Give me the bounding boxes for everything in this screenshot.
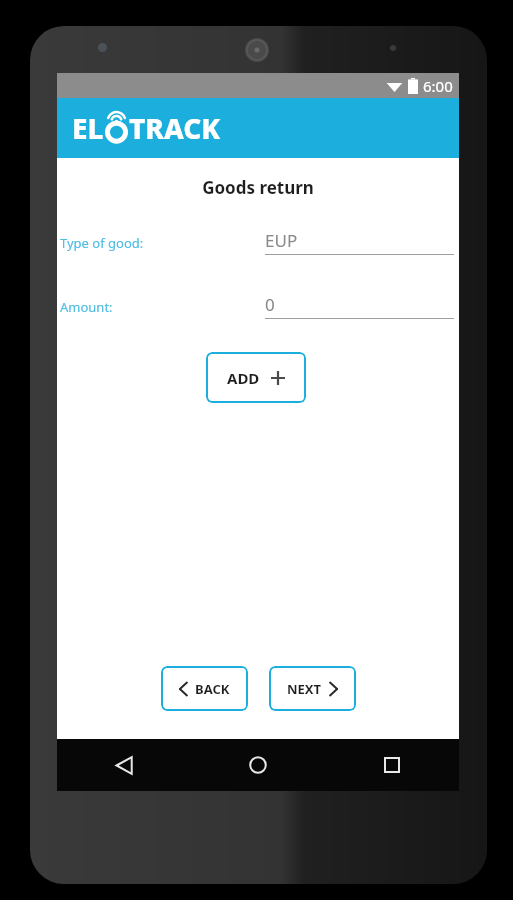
staticText: EL [72, 109, 104, 147]
staticText: TRACK [129, 109, 221, 147]
staticText: NEXT [287, 680, 322, 698]
staticText: Goods return [57, 176, 459, 199]
staticText: Type of good: [60, 234, 144, 252]
staticText: 6:00 [423, 76, 453, 96]
button[interactable]: Amount: [57, 290, 459, 324]
button[interactable]: NEXT [269, 666, 356, 711]
button[interactable]: Type of good: [57, 226, 459, 260]
button[interactable]: Back [57, 739, 191, 791]
button[interactable]: Recent apps [325, 739, 459, 791]
button[interactable]: EloTrack home [72, 109, 221, 147]
staticText: Amount: [60, 298, 113, 316]
staticText: 0 [265, 293, 275, 316]
staticText: ADD [227, 368, 260, 388]
button[interactable]: BACK [161, 666, 248, 711]
button[interactable]: ADD [206, 352, 306, 403]
button[interactable]: Home [191, 739, 325, 791]
staticText: EUP [265, 229, 298, 252]
staticText: BACK [195, 680, 230, 698]
